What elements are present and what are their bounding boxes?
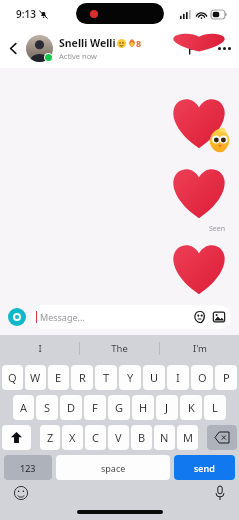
button[interactable]: I [0,335,79,361]
button[interactable]: Dictation [215,486,225,500]
button[interactable]: M [177,425,198,450]
button[interactable]: S [36,395,58,420]
button[interactable]: Gallery [213,311,225,323]
button[interactable]: E [48,365,69,390]
button[interactable]: Camera [8,308,26,326]
button[interactable]: More options [209,28,239,68]
staticText: S [44,400,51,415]
staticText: send [194,462,215,474]
staticText: V [115,430,122,445]
button[interactable]: H [132,395,154,420]
staticText: 8 [136,37,142,49]
staticText: C [92,430,99,445]
button[interactable]: Q [2,365,23,390]
staticText: O [198,370,207,385]
staticText: Snelli Welli [59,36,116,50]
button[interactable]: send [174,455,235,480]
staticText: Z [47,430,54,445]
staticText: I [176,370,180,385]
staticText: W [30,370,41,385]
staticText: N [160,430,169,445]
staticText: Active now [59,51,97,61]
staticText: M [183,430,193,445]
button[interactable]: Y [119,365,141,390]
button[interactable]: P [215,365,237,390]
button[interactable]: Stickers [194,311,206,323]
staticText: Y [127,370,134,385]
button[interactable]: X [62,425,83,450]
button[interactable]: F [84,395,106,420]
button[interactable]: K [180,395,202,420]
button[interactable]: D [60,395,82,420]
staticText: T [103,370,110,385]
staticText: G [115,400,124,415]
staticText: The [111,342,128,355]
button[interactable]: W [25,365,46,390]
staticText: L [212,400,218,415]
staticText: K [188,400,195,415]
staticText: A [20,400,28,415]
button[interactable]: Snelli Welli [26,28,179,68]
staticText: I'm [193,342,207,355]
button[interactable]: J [156,395,178,420]
staticText: space [101,462,126,474]
staticText: J [165,400,169,415]
button[interactable]: Message... [31,305,231,329]
staticText: R [79,370,86,385]
staticText: I [38,342,42,355]
staticText: P [223,370,230,385]
button[interactable]: B [131,425,152,450]
staticText: E [55,370,62,385]
button[interactable] [171,240,227,296]
staticText: F [92,400,98,415]
staticText: 123 [20,462,36,474]
button[interactable]: space [56,455,170,480]
button[interactable]: N [154,425,175,450]
button[interactable]: Emoji [14,486,28,500]
staticText: X [69,430,76,445]
staticText: Seen [209,224,226,234]
button[interactable]: The [80,335,159,361]
staticText: D [67,400,76,415]
button[interactable]: I'm [160,335,239,361]
button[interactable]: I [167,365,189,390]
button[interactable]: Z [40,425,60,450]
button[interactable]: L [204,395,226,420]
staticText: U [150,370,159,385]
staticText: Message... [40,311,85,323]
button[interactable]: R [71,365,93,390]
button[interactable]: V [108,425,129,450]
button[interactable] [171,164,227,220]
button[interactable]: Back [0,28,26,68]
button[interactable]: 123 [4,455,52,480]
button[interactable]: T [95,365,117,390]
button[interactable]: Shift [2,425,31,450]
staticText: H [139,400,148,415]
button[interactable]: A [13,395,34,420]
staticText: Q [8,370,17,385]
staticText: 9:13 [16,7,36,21]
button[interactable] [171,94,227,150]
button[interactable]: Report [179,28,209,68]
button[interactable]: O [191,365,213,390]
button[interactable]: Backspace [207,425,237,450]
staticText: B [138,430,146,445]
button[interactable]: G [108,395,130,420]
button[interactable]: U [143,365,165,390]
button[interactable]: C [85,425,106,450]
